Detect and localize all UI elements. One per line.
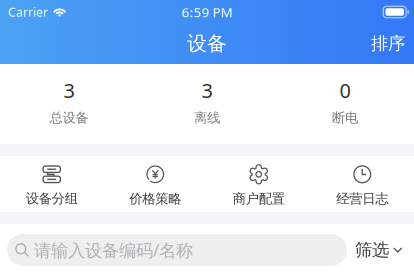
staticText: 3 bbox=[201, 77, 212, 104]
button[interactable]: 筛选 bbox=[347, 230, 411, 270]
staticText: 0 bbox=[339, 77, 350, 104]
button[interactable]: 经营日志 bbox=[310, 165, 414, 207]
staticText: 排序 bbox=[371, 33, 405, 54]
staticText: 3 bbox=[63, 77, 74, 104]
staticText: 筛选 bbox=[355, 239, 389, 261]
button[interactable]: 价格策略 bbox=[103, 165, 207, 207]
staticText: 离线 bbox=[194, 110, 220, 126]
staticText: 总设备 bbox=[49, 110, 88, 126]
button[interactable]: 排序 bbox=[362, 24, 414, 63]
button[interactable]: 设备分组 bbox=[0, 165, 103, 207]
staticText: 价格策略 bbox=[129, 190, 181, 207]
staticText: Carrier bbox=[8, 4, 48, 20]
staticText: 商户配置 bbox=[233, 191, 285, 207]
staticText: 请输入设备编码/名称 bbox=[34, 238, 193, 261]
staticText: 设备 bbox=[187, 31, 227, 56]
staticText: 6:59 PM bbox=[181, 3, 232, 21]
button[interactable]: 商户配置 bbox=[207, 165, 310, 207]
staticText: 设备分组 bbox=[26, 190, 78, 207]
staticText: 经营日志 bbox=[336, 190, 388, 207]
staticText: 断电 bbox=[332, 110, 358, 126]
